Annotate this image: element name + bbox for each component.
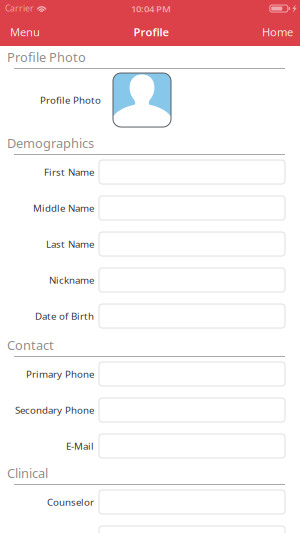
button[interactable]: Program <box>99 526 285 533</box>
button[interactable]: Profile Photo <box>101 73 171 127</box>
button[interactable]: Home <box>256 18 296 46</box>
button[interactable]: Last Name <box>99 232 285 256</box>
button[interactable]: Nickname <box>99 268 285 292</box>
button[interactable]: Date of Birth <box>99 304 285 328</box>
staticText: Counselor <box>47 495 94 509</box>
staticText: Primary Phone <box>26 367 94 381</box>
staticText: 10:04 PM <box>131 2 171 15</box>
staticText: Clinical <box>7 464 48 482</box>
staticText: Profile <box>133 24 169 40</box>
button[interactable]: Middle Name <box>99 196 285 220</box>
staticText: Home <box>262 24 293 40</box>
staticText: Menu <box>10 24 40 40</box>
staticText: Carrier <box>5 2 34 14</box>
staticText: Nickname <box>49 273 94 287</box>
staticText: E-Mail <box>66 439 94 453</box>
button[interactable]: E-Mail <box>99 434 285 458</box>
staticText: Demographics <box>7 134 94 152</box>
button[interactable]: First Name <box>99 160 285 184</box>
button[interactable]: Secondary Phone <box>99 398 285 422</box>
staticText: Profile Photo <box>7 48 86 66</box>
button[interactable]: Primary Phone <box>99 362 285 386</box>
staticText: Contact <box>7 336 54 354</box>
button[interactable]: Menu <box>4 18 46 46</box>
staticText: Secondary Phone <box>15 403 94 417</box>
staticText: Last Name <box>46 237 94 251</box>
staticText: Profile Photo <box>40 93 101 107</box>
staticText: Middle Name <box>33 201 94 215</box>
staticText: Date of Birth <box>35 309 94 323</box>
button[interactable]: Counselor <box>99 490 285 514</box>
staticText: First Name <box>44 165 94 179</box>
